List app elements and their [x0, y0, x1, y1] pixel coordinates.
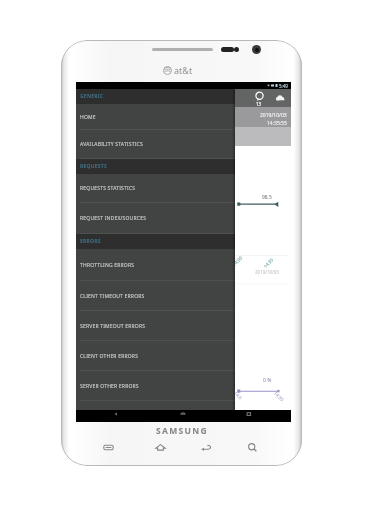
staticText: ERRORS	[80, 238, 101, 245]
button[interactable]: CLIENT TIMEOUT ERRORS	[76, 281, 235, 311]
button[interactable]: AVAILABILITY STATISTICS	[76, 130, 235, 159]
staticText: CLIENT OTHER ERRORS	[80, 353, 139, 360]
staticText: 5:49	[279, 83, 288, 89]
staticText: 14:0	[233, 390, 243, 400]
button[interactable]: THROTTLING ERRORS	[76, 249, 235, 281]
button[interactable]: Home	[179, 410, 189, 418]
staticText: CLIENT TIMEOUT ERRORS	[80, 293, 145, 300]
button[interactable]: CLIENT OTHER ERRORS	[76, 341, 235, 371]
staticText: 13	[256, 101, 262, 107]
staticText: THROTTLING ERRORS	[80, 262, 135, 269]
staticText: 14:35	[273, 390, 286, 403]
button[interactable]: Menu	[102, 441, 115, 454]
button[interactable]: SERVER TIMEOUT ERRORS	[76, 311, 235, 341]
button[interactable]: REQUESTS STATISTICS	[76, 174, 235, 203]
staticText: at&t	[174, 64, 193, 76]
staticText: 14:00	[231, 254, 244, 267]
staticText: 2019/10/03	[255, 269, 279, 275]
staticText: SERVER OTHER ERRORS	[80, 383, 139, 390]
button[interactable]: Home	[154, 441, 167, 454]
staticText: 14:35	[262, 256, 275, 269]
button[interactable]: Back	[200, 441, 213, 454]
staticText: REQUEST INDEX/SOURCES	[80, 215, 147, 222]
button[interactable]: HOME	[76, 104, 235, 130]
staticText: HOME	[80, 114, 96, 121]
button[interactable]: Search	[246, 441, 259, 454]
staticText: REQUESTS	[80, 163, 108, 170]
staticText: REQUESTS STATISTICS	[80, 185, 136, 192]
staticText: GENERIC	[80, 93, 104, 100]
button[interactable]: Recents	[245, 410, 255, 418]
button[interactable]: Back	[112, 410, 122, 418]
staticText: 2019/10/03	[260, 112, 287, 119]
staticText: 14:35:55	[267, 120, 287, 127]
button[interactable]: Weather	[272, 89, 288, 107]
staticText: 98.5	[262, 194, 272, 201]
button[interactable]: Messages	[251, 89, 267, 107]
staticText: AVAILABILITY STATISTICS	[80, 141, 143, 148]
staticText: 0 %	[263, 377, 272, 384]
staticText: SERVER TIMEOUT ERRORS	[80, 323, 146, 330]
staticText: SAMSUNG	[156, 425, 208, 437]
button[interactable]: SERVER OTHER ERRORS	[76, 371, 235, 401]
button[interactable]: REQUEST INDEX/SOURCES	[76, 203, 235, 234]
